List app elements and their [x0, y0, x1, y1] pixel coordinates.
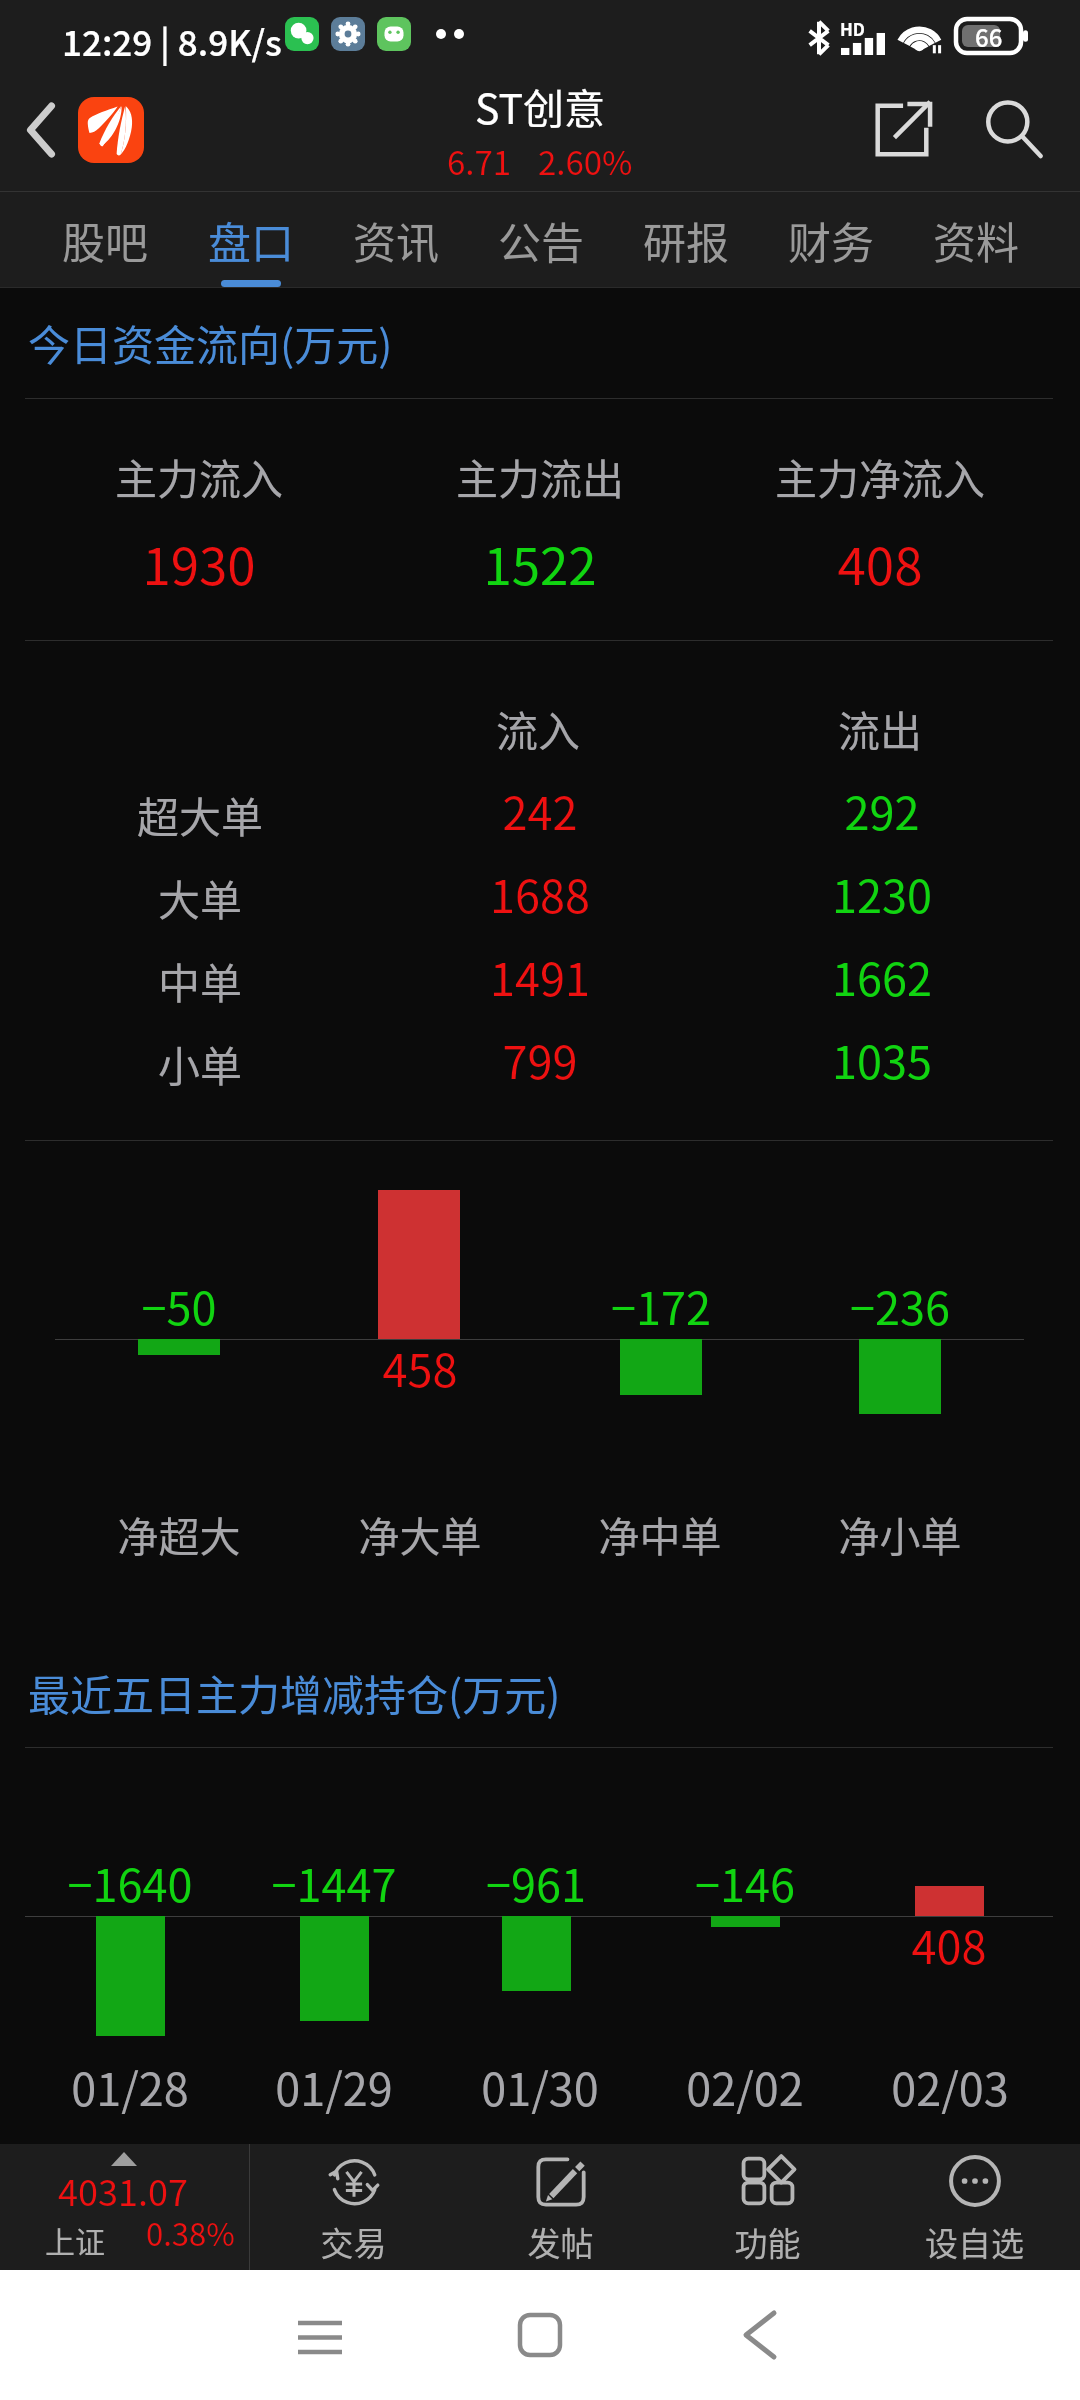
staticText: 主力流出 — [0, 446, 1080, 507]
staticText: HD — [840, 16, 866, 41]
staticText: 资料 — [933, 209, 1019, 271]
button[interactable]: 发帖 — [457, 2144, 664, 2270]
staticText: 4031.07 — [0, 2164, 246, 2216]
staticText: 1230 — [684, 861, 1080, 926]
staticText: 流出 — [680, 698, 1080, 759]
staticText: 1662 — [684, 944, 1080, 1009]
staticText: 799 — [0, 1027, 1080, 1092]
button[interactable]: 功能 — [664, 2144, 871, 2270]
button[interactable]: Recents — [210, 2270, 430, 2400]
staticText: 研报 — [643, 209, 729, 271]
staticText: 财务 — [788, 209, 874, 271]
staticText: 02/02 — [410, 2054, 1080, 2119]
button[interactable]: Back — [6, 94, 78, 166]
button[interactable]: 交易 — [250, 2144, 457, 2270]
button[interactable]: 研报 — [613, 192, 758, 288]
staticText: 01/29 — [0, 2054, 668, 2119]
staticText: −146 — [410, 1850, 1080, 1915]
staticText: 408 — [680, 526, 1080, 600]
staticText: 02/03 — [820, 2054, 1080, 2119]
button[interactable]: 资讯 — [323, 192, 468, 288]
staticText: 设自选 — [871, 2218, 1078, 2266]
staticText: 净小单 — [720, 1504, 1080, 1563]
staticText: 292 — [684, 778, 1080, 843]
staticText: 1491 — [0, 944, 1080, 1009]
button[interactable]: 公告 — [468, 192, 613, 288]
staticText: 小单 — [0, 1033, 400, 1094]
staticText: 458 — [0, 1335, 840, 1400]
staticText: 流入 — [0, 698, 1076, 759]
staticText: 公告 — [498, 209, 584, 271]
staticText: 66 — [975, 19, 1003, 53]
button[interactable]: Search — [968, 84, 1060, 176]
staticText: 0.38% — [146, 2210, 235, 2255]
staticText: 主力流入 — [0, 446, 398, 507]
staticText: 资讯 — [353, 209, 439, 271]
staticText: −172 — [242, 1273, 1080, 1338]
staticText: −50 — [0, 1273, 358, 1338]
button[interactable]: 4031.07 — [0, 2144, 250, 2270]
staticText: 主力净流入 — [680, 446, 1080, 507]
staticText: 最近五日主力增减持仓(万元) — [28, 1662, 561, 1723]
staticText: 超大单 — [0, 784, 400, 845]
staticText: 408 — [818, 1912, 1080, 1977]
staticText: 6.71 — [447, 137, 512, 185]
staticText: 净中单 — [240, 1504, 1080, 1563]
staticText: 大单 — [0, 867, 400, 928]
staticText: 1035 — [684, 1027, 1080, 1092]
staticText: −1447 — [0, 1850, 668, 1915]
staticText: 242 — [0, 778, 1080, 843]
button[interactable]: Home — [430, 2270, 650, 2400]
staticText: 盘口 — [208, 209, 294, 271]
button[interactable]: 设自选 — [871, 2144, 1078, 2270]
button[interactable]: Share — [856, 84, 948, 176]
staticText: 1522 — [0, 526, 1080, 600]
staticText: 01/28 — [0, 2054, 260, 2119]
button[interactable]: 盘口 — [178, 192, 323, 288]
staticText: 上证 — [45, 2218, 105, 2261]
staticText: 中单 — [0, 950, 400, 1011]
staticText: 交易 — [250, 2218, 457, 2266]
button[interactable]: 股吧 — [32, 192, 178, 288]
button[interactable]: 财务 — [758, 192, 903, 288]
staticText: 01/30 — [0, 2054, 1080, 2119]
staticText: 1688 — [0, 861, 1080, 926]
staticText: 净超大 — [0, 1504, 358, 1563]
button[interactable]: App logo — [78, 97, 144, 163]
staticText: 功能 — [664, 2218, 871, 2266]
staticText: 今日资金流向(万元) — [28, 312, 393, 373]
staticText: 净大单 — [0, 1504, 840, 1563]
button[interactable]: 资料 — [903, 192, 1048, 288]
staticText: −961 — [0, 1850, 1072, 1915]
staticText: 2.60% — [538, 137, 633, 185]
button[interactable]: Back — [650, 2270, 870, 2400]
staticText: 1930 — [0, 526, 398, 600]
staticText: 股吧 — [62, 209, 148, 271]
staticText: −236 — [720, 1273, 1080, 1338]
staticText: ST创意 — [475, 76, 606, 135]
staticText: 12:29 | 8.9K/s — [62, 15, 282, 66]
staticText: −1640 — [0, 1850, 260, 1915]
staticText: 发帖 — [457, 2218, 664, 2266]
